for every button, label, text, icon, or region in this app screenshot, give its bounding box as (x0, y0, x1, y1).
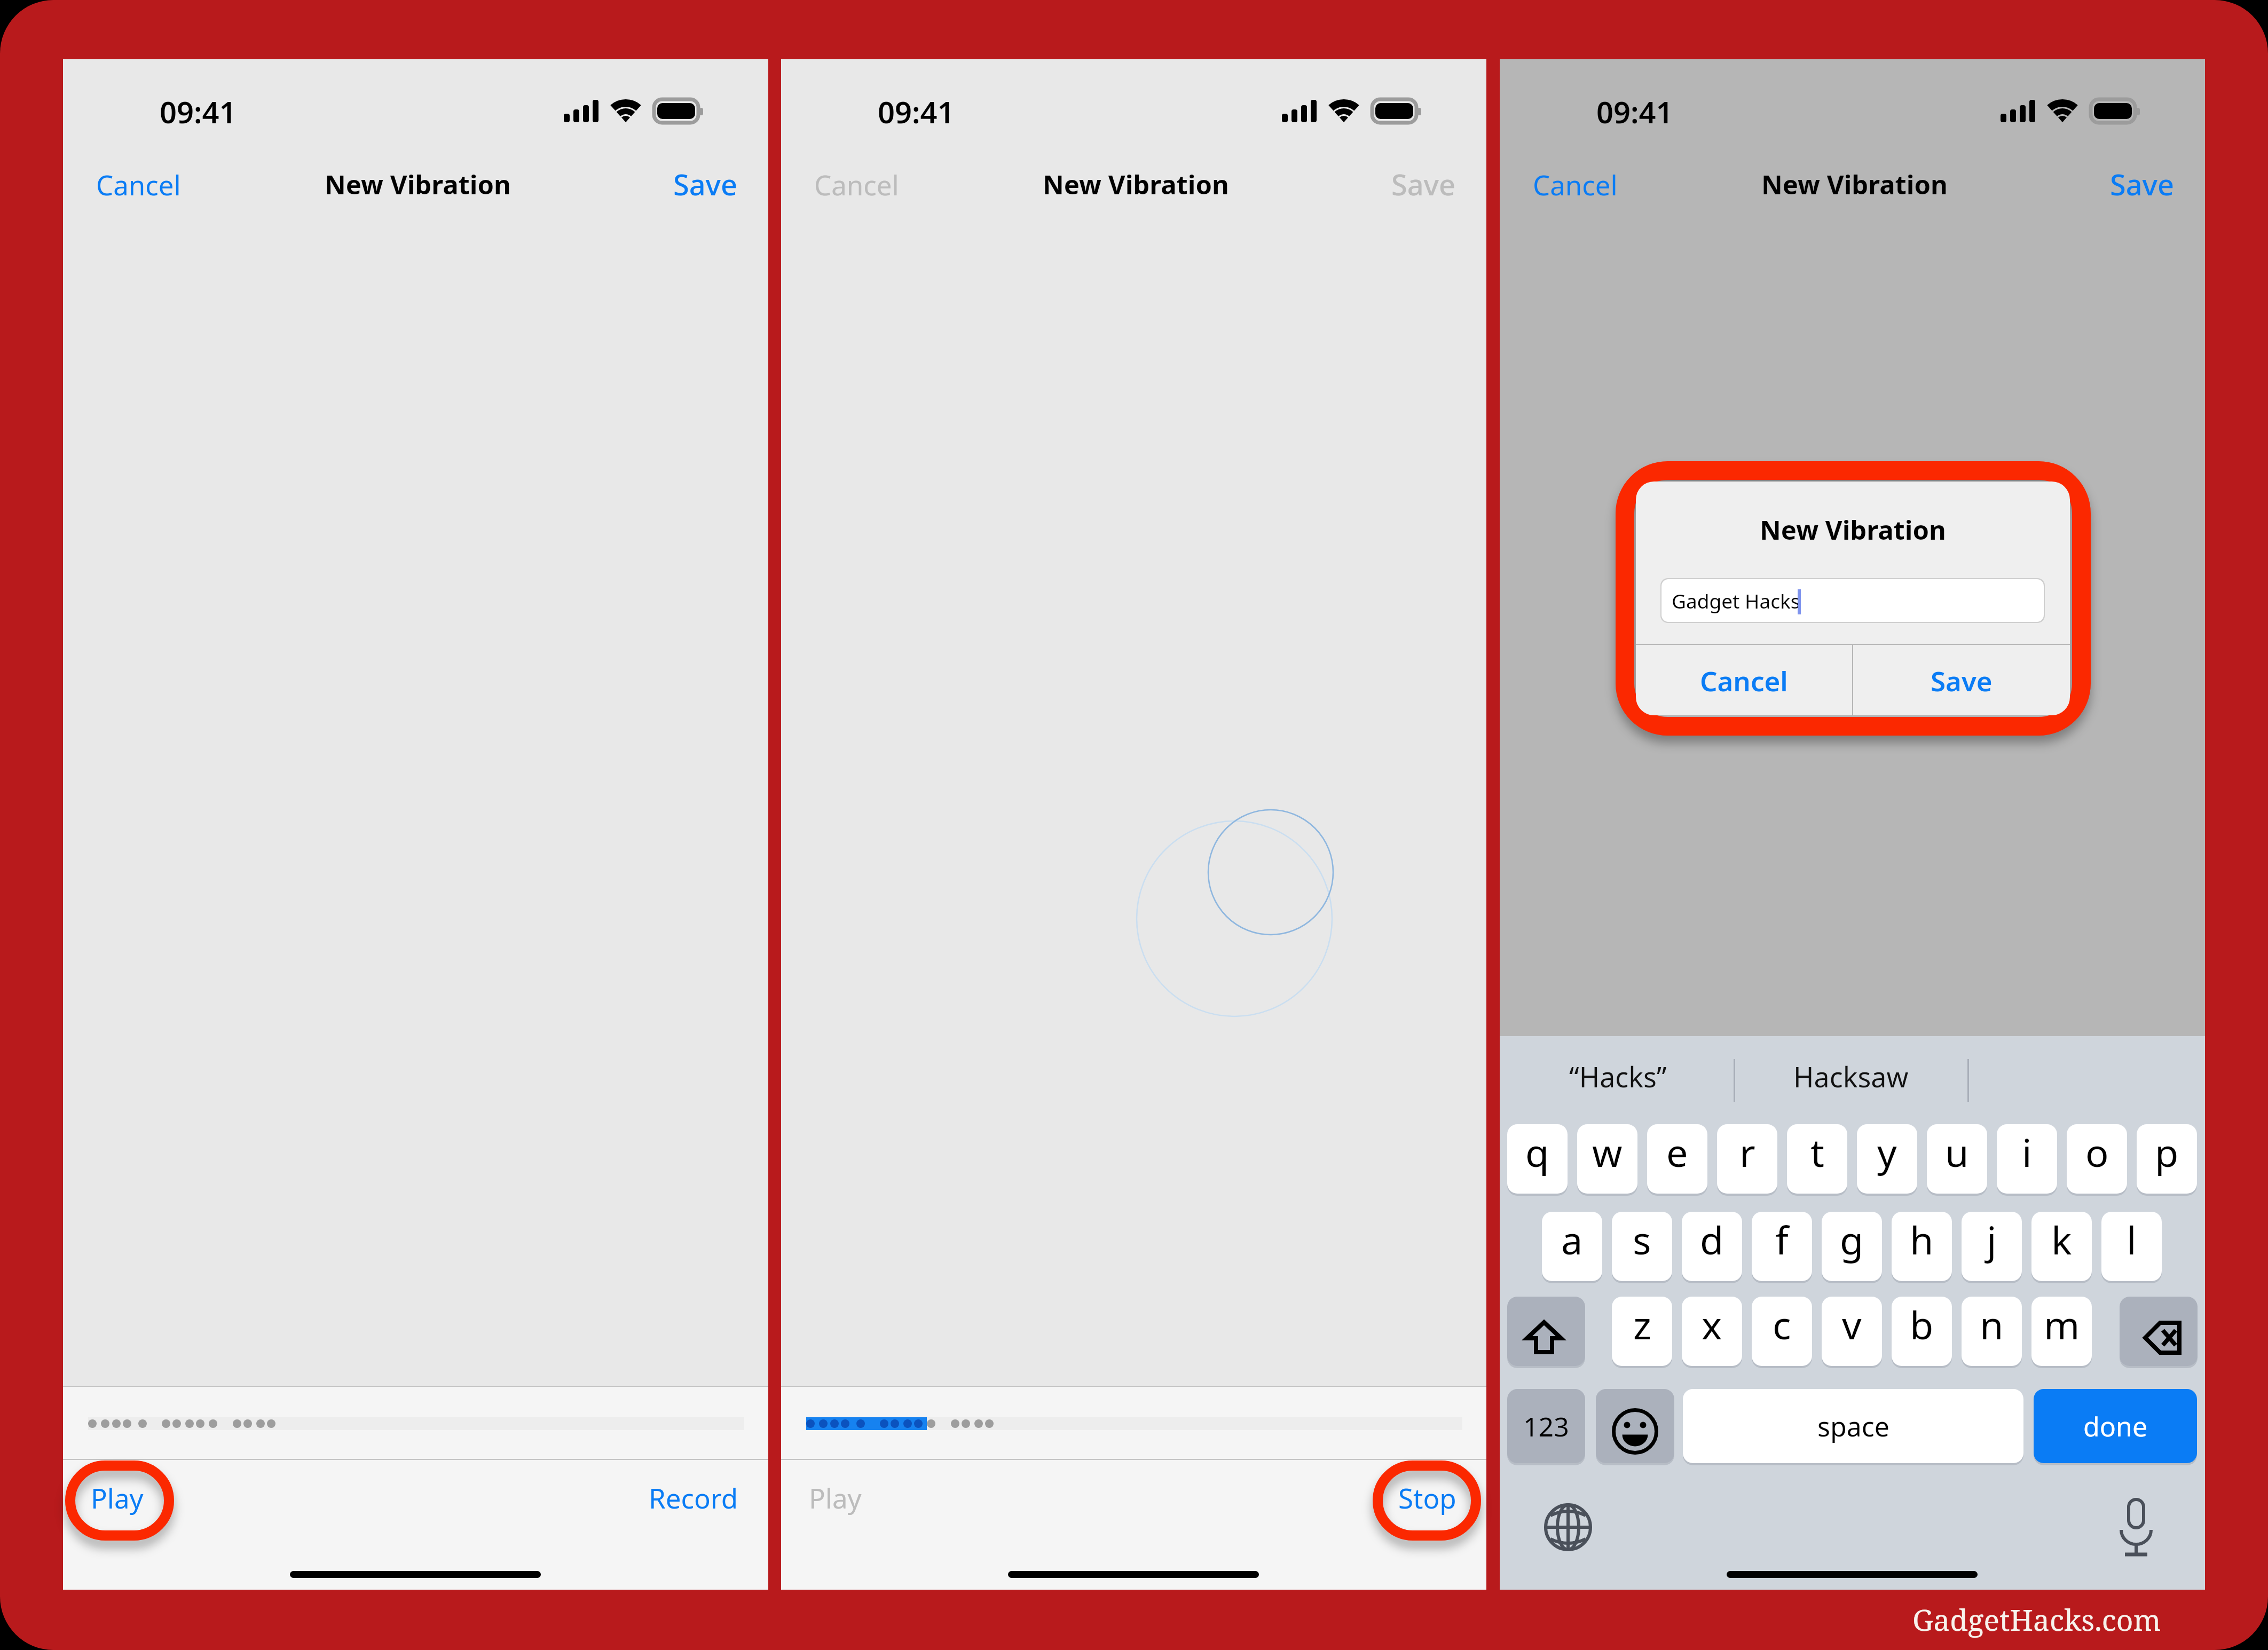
staticText: Play (91, 1479, 144, 1516)
staticText: Cancel (1533, 166, 1618, 203)
staticText: o (2085, 1126, 2109, 1178)
staticText: v (1842, 1298, 1862, 1351)
button[interactable]: Save (1853, 645, 2070, 715)
staticText: b (1910, 1298, 1934, 1351)
staticText: Cancel (814, 166, 899, 203)
staticText: s (1633, 1213, 1651, 1266)
staticText: u (1945, 1126, 1969, 1178)
button[interactable]: f (1752, 1212, 1812, 1281)
staticText: 09:41 (160, 91, 237, 132)
button[interactable]: Dictation (2105, 1495, 2169, 1559)
staticText: Record (649, 1479, 738, 1516)
staticText: Hacksaw (1793, 1057, 1909, 1095)
button[interactable]: o (2067, 1124, 2127, 1194)
staticText: t (1810, 1126, 1824, 1178)
staticText: 123 (1523, 1408, 1569, 1444)
staticText: r (1739, 1126, 1755, 1178)
button[interactable]: z (1612, 1297, 1672, 1366)
staticText: Play (809, 1479, 862, 1516)
staticText: Save (1391, 164, 1456, 204)
staticText: done (2083, 1408, 2148, 1444)
staticText: g (1840, 1213, 1864, 1266)
button[interactable]: space (1683, 1389, 2023, 1463)
button[interactable]: Play (786, 1466, 925, 1530)
staticText: d (1700, 1213, 1724, 1266)
staticText: p (2155, 1126, 2179, 1178)
button[interactable]: b (1892, 1297, 1952, 1366)
button[interactable]: Switch keyboard language (1537, 1495, 1601, 1559)
staticText: c (1773, 1298, 1791, 1351)
staticText: space (1817, 1408, 1889, 1444)
staticText: q (1525, 1126, 1549, 1178)
button[interactable]: Stop (1342, 1466, 1486, 1530)
staticText: x (1702, 1298, 1722, 1351)
staticText: m (2044, 1298, 2080, 1351)
button[interactable]: q (1507, 1124, 1568, 1194)
button[interactable]: n (1962, 1297, 2022, 1366)
staticText: New Vibration (1636, 512, 2070, 548)
button[interactable]: r (1717, 1124, 1777, 1194)
button[interactable]: d (1682, 1212, 1742, 1281)
button[interactable]: Delete (2120, 1297, 2198, 1366)
staticText: 09:41 (878, 91, 955, 132)
staticText: f (1775, 1213, 1789, 1266)
button[interactable]: Save (1368, 153, 1486, 217)
button[interactable]: p (2137, 1124, 2197, 1194)
button[interactable]: g (1822, 1212, 1882, 1281)
button[interactable]: i (1997, 1124, 2057, 1194)
button[interactable]: Save (650, 153, 768, 217)
staticText: a (1561, 1213, 1583, 1266)
button[interactable]: w (1577, 1124, 1637, 1194)
button[interactable]: done (2034, 1389, 2197, 1463)
button[interactable]: h (1892, 1212, 1952, 1281)
button[interactable]: l (2101, 1212, 2162, 1281)
button[interactable]: Cancel (74, 153, 218, 217)
staticText: Cancel (96, 166, 181, 203)
staticText: j (1987, 1213, 1997, 1266)
button[interactable]: Emoji (1596, 1389, 1674, 1463)
staticText: “Hacks” (1569, 1057, 1667, 1095)
staticText: Cancel (1700, 662, 1788, 699)
staticText: Save (1931, 662, 1993, 699)
button[interactable]: m (2031, 1297, 2092, 1366)
staticText: Save (673, 164, 738, 204)
button[interactable]: e (1647, 1124, 1707, 1194)
button[interactable]: Cancel (1636, 645, 1852, 715)
staticText: Gadget Hacks (1672, 587, 1800, 614)
staticText: Stop (1398, 1479, 1456, 1516)
button[interactable]: Play (68, 1466, 207, 1530)
button[interactable]: u (1927, 1124, 1987, 1194)
button[interactable]: v (1822, 1297, 1882, 1366)
button[interactable]: Shift (1507, 1297, 1585, 1366)
button[interactable]: k (2031, 1212, 2092, 1281)
button[interactable]: Cancel (1510, 153, 1655, 217)
button[interactable]: y (1857, 1124, 1917, 1194)
staticText: z (1633, 1298, 1651, 1351)
staticText: e (1666, 1126, 1688, 1178)
button[interactable]: s (1612, 1212, 1672, 1281)
button[interactable]: t (1787, 1124, 1847, 1194)
button[interactable]: Cancel (792, 153, 936, 217)
button[interactable]: Record (624, 1466, 768, 1530)
staticText: i (2022, 1126, 2032, 1178)
staticText: New Vibration (1761, 167, 1948, 202)
staticText: New Vibration (1043, 167, 1229, 202)
staticText: w (1592, 1126, 1623, 1178)
staticText: k (2051, 1213, 2072, 1266)
button[interactable]: c (1752, 1297, 1812, 1366)
staticText: l (2127, 1213, 2137, 1266)
staticText: New Vibration (325, 167, 511, 202)
staticText: n (1980, 1298, 2004, 1351)
staticText: h (1910, 1213, 1934, 1266)
staticText: y (1877, 1126, 1897, 1178)
button[interactable]: Save (2087, 153, 2205, 217)
staticText: Save (2110, 164, 2175, 204)
button[interactable]: 123 (1507, 1389, 1585, 1463)
button[interactable]: j (1962, 1212, 2022, 1281)
button[interactable]: x (1682, 1297, 1742, 1366)
button[interactable]: a (1542, 1212, 1602, 1281)
staticText: 09:41 (1596, 91, 1673, 132)
staticText: GadgetHacks.com (1912, 1599, 2161, 1639)
